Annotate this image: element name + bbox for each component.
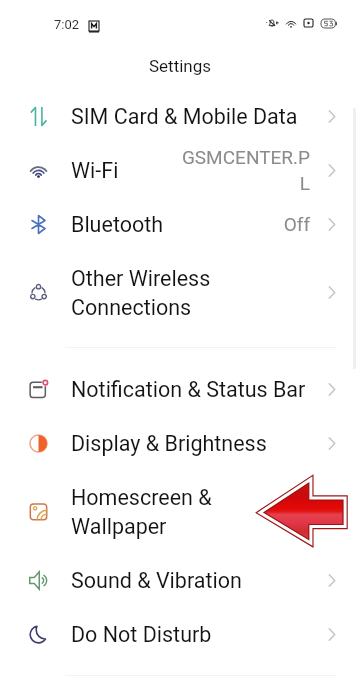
button[interactable]: Other Wireless Connections [0,251,360,334]
button[interactable]: Homescreen & Wallpaper [0,470,360,553]
button[interactable]: Notification & Status Bar [0,362,360,416]
button[interactable]: Bluetooth [0,197,360,251]
button[interactable]: Wi-Fi [0,143,360,197]
button[interactable]: SIM Card & Mobile Data [0,89,360,143]
staticText: Notification & Status Bar [71,377,318,402]
staticText: Display & Brightness [71,431,318,456]
button[interactable]: Do Not Disturb [0,607,360,661]
staticText: SIM Card & Mobile Data [71,104,318,129]
button[interactable]: Display & Brightness [0,416,360,470]
staticText: Do Not Disturb [71,622,318,647]
button[interactable]: Sound & Vibration [0,553,360,607]
staticText: Sound & Vibration [71,568,318,593]
staticText: Other Wireless Connections [71,266,318,320]
staticText: 7:02 [54,17,80,32]
staticText: GSMCENTER.PL [179,146,310,195]
staticText: Homescreen & Wallpaper [71,485,318,539]
staticText: Off [179,213,310,235]
staticText: Wi-Fi [71,158,179,183]
staticText: Settings [149,56,212,76]
staticText: Bluetooth [71,212,179,237]
